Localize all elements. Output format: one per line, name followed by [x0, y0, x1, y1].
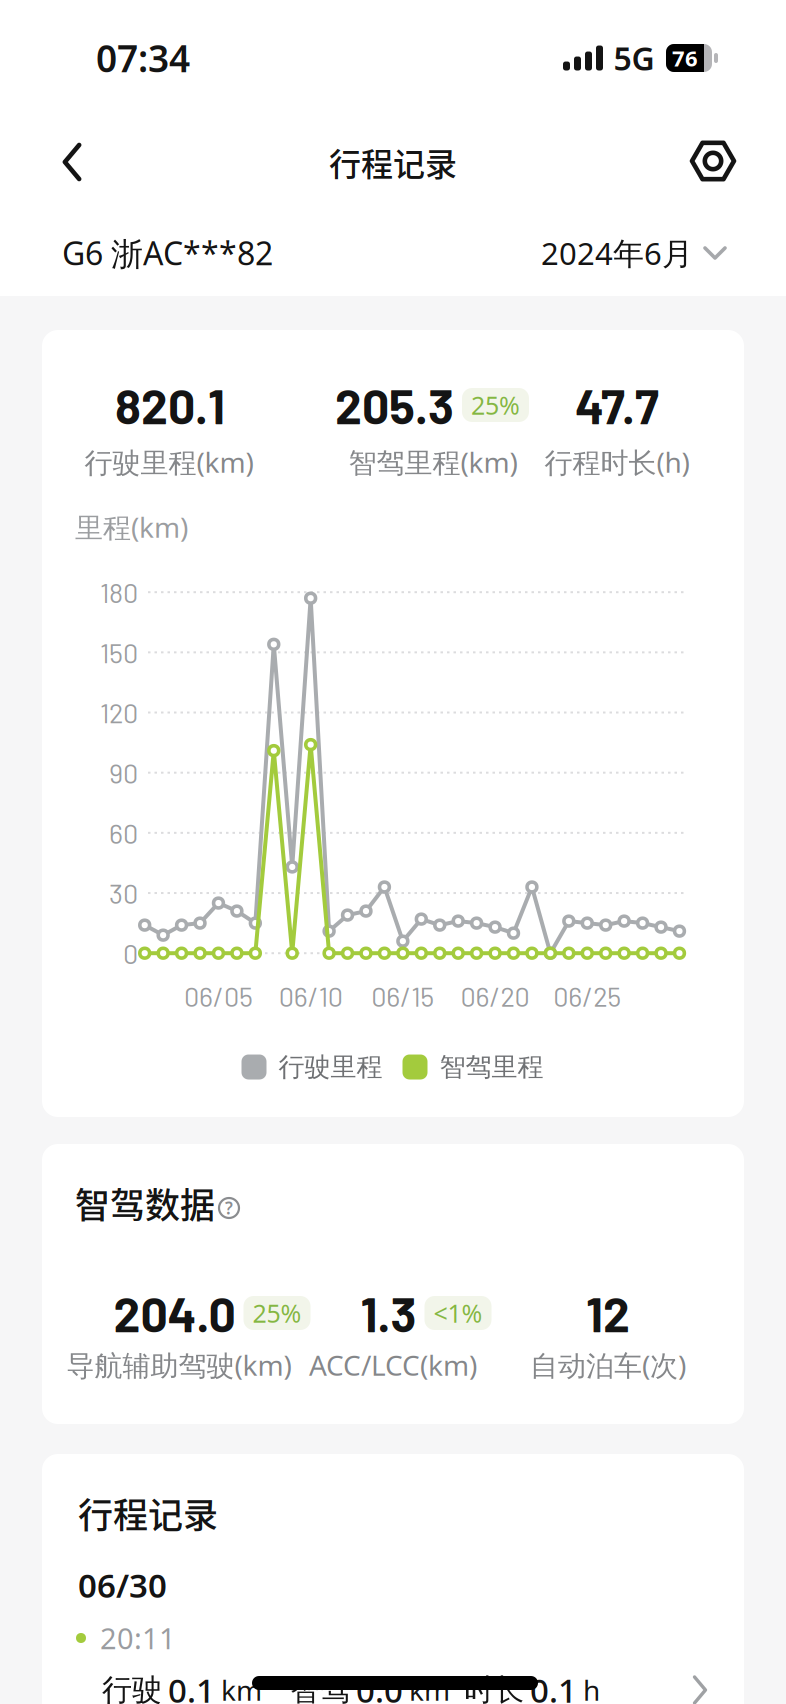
staticText: 12: [586, 1285, 630, 1341]
staticText: 0.1: [168, 1668, 215, 1704]
staticText: 0.0: [356, 1668, 403, 1704]
staticText: 30: [109, 877, 138, 909]
staticText: 06/05: [184, 980, 253, 1012]
staticText: 行程记录: [78, 1488, 218, 1538]
staticText: 0: [123, 937, 138, 969]
staticText: 行驶里程(km): [84, 443, 253, 481]
staticText: 820.1: [115, 377, 225, 433]
staticText: 90: [109, 757, 138, 788]
staticText: G6 浙AC***82: [62, 232, 273, 274]
staticText: 06/30: [78, 1563, 167, 1607]
staticText: 行程记录: [329, 139, 457, 185]
staticText: 120: [100, 697, 138, 728]
staticText: 智驾里程(km): [348, 443, 517, 481]
staticText: 0.1: [530, 1668, 577, 1704]
button[interactable]: About smart driving data: [216, 1195, 242, 1221]
button[interactable]: 2024年6月: [541, 232, 731, 274]
staticText: h: [583, 1671, 600, 1704]
staticText: 06/15: [371, 980, 434, 1012]
staticText: ACC/LCC(km): [309, 1346, 477, 1384]
staticText: 47.7: [575, 377, 659, 433]
staticText: 180: [100, 576, 138, 608]
staticText: 智驾数据: [75, 1178, 215, 1228]
staticText: 导航辅助驾驶(km): [66, 1346, 291, 1384]
staticText: 智驾里程: [439, 1051, 543, 1083]
staticText: 205.3: [335, 377, 454, 433]
staticText: 时长: [464, 1672, 524, 1704]
button[interactable]: Settings: [689, 137, 737, 185]
staticText: 25%: [252, 1296, 301, 1330]
staticText: 25%: [471, 388, 520, 422]
staticText: 06/25: [553, 980, 621, 1012]
staticText: 行驶: [102, 1672, 162, 1704]
staticText: km: [221, 1671, 262, 1704]
staticText: 智驾: [290, 1672, 350, 1704]
staticText: 60: [109, 817, 138, 849]
staticText: 5G: [613, 37, 654, 79]
staticText: 2024年6月: [541, 232, 693, 274]
staticText: km: [409, 1671, 450, 1704]
staticText: 自动泊车(次): [530, 1346, 686, 1384]
staticText: 行程时长(h): [544, 443, 689, 481]
staticText: 76: [672, 43, 698, 73]
staticText: 20:11: [100, 1619, 176, 1657]
staticText: 06/10: [279, 980, 343, 1012]
staticText: 150: [100, 637, 138, 668]
staticText: 1.3: [360, 1285, 416, 1341]
staticText: 204.0: [113, 1285, 235, 1341]
staticText: 行驶里程: [278, 1051, 382, 1083]
staticText: 06/20: [461, 980, 530, 1012]
staticText: ?: [225, 1197, 233, 1219]
staticText: 07:34: [96, 33, 190, 82]
staticText: <1%: [433, 1296, 482, 1330]
button[interactable]: Back: [52, 142, 92, 182]
button[interactable]: 行驶: [42, 1658, 744, 1704]
staticText: 里程(km): [75, 508, 188, 546]
